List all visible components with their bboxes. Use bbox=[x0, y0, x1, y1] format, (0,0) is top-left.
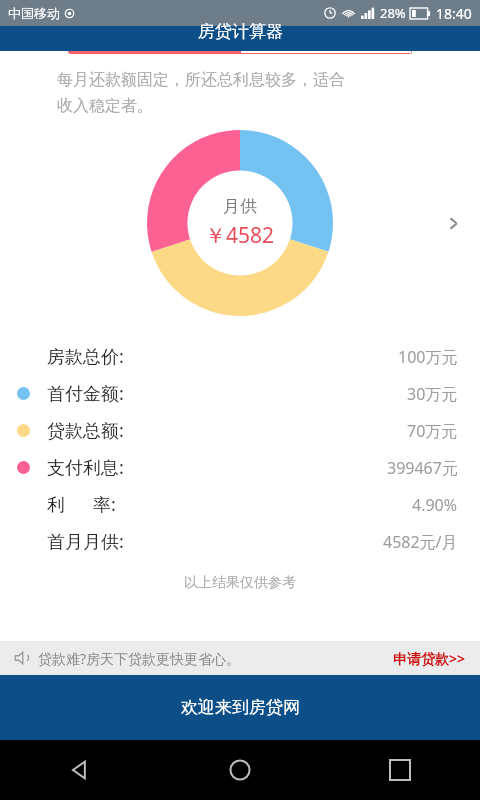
button[interactable]: 下一个 bbox=[436, 206, 470, 240]
staticText: 支付利息: bbox=[47, 455, 124, 480]
staticText: 利 率: bbox=[47, 492, 116, 517]
staticText: 4582元/月 bbox=[383, 531, 458, 553]
staticText: 399467元 bbox=[387, 457, 458, 479]
button[interactable]: 利 率: bbox=[0, 486, 480, 523]
staticText: ￥4582 bbox=[205, 221, 275, 250]
staticText: 房贷计算器 bbox=[198, 21, 283, 42]
button[interactable]: 房款总价: bbox=[0, 338, 480, 375]
staticText: 收入稳定者。 bbox=[57, 96, 153, 116]
staticText: 30万元 bbox=[407, 383, 458, 405]
button[interactable]: 最近任务 bbox=[320, 740, 480, 800]
button[interactable]: 欢迎来到房贷网 bbox=[0, 675, 480, 740]
button[interactable]: 首付金额: bbox=[0, 375, 480, 412]
button[interactable]: 主屏幕 bbox=[160, 740, 320, 800]
staticText: 100万元 bbox=[398, 346, 458, 368]
staticText: 4.90% bbox=[412, 494, 458, 516]
staticText: 28% bbox=[380, 4, 406, 22]
staticText: 70万元 bbox=[407, 420, 458, 442]
staticText: 贷款难?房天下贷款更快更省心。 bbox=[38, 649, 241, 668]
staticText: 以上结果仅供参考 bbox=[0, 574, 480, 592]
button[interactable] bbox=[68, 48, 240, 54]
button[interactable]: 支付利息: bbox=[0, 449, 480, 486]
staticText: 18:40 bbox=[436, 4, 472, 23]
staticText: 每月还款额固定，所还总利息较多，适合 bbox=[57, 70, 345, 90]
staticText: 欢迎来到房贷网 bbox=[181, 697, 300, 718]
staticText: 中国移动 bbox=[8, 5, 60, 21]
staticText: 首月月供: bbox=[47, 529, 124, 554]
staticText: 房款总价: bbox=[47, 344, 124, 369]
button[interactable] bbox=[240, 48, 412, 54]
button[interactable]: 申请贷款>> bbox=[393, 649, 466, 668]
button[interactable]: 贷款总额: bbox=[0, 412, 480, 449]
button[interactable]: 首月月供: bbox=[0, 523, 480, 560]
staticText: 贷款总额: bbox=[47, 418, 124, 443]
staticText: 月供 bbox=[223, 196, 257, 217]
button[interactable]: 贷款难?房天下贷款更快更省心。 bbox=[0, 641, 480, 675]
staticText: 首付金额: bbox=[47, 381, 124, 406]
button[interactable]: 返回 bbox=[0, 740, 160, 800]
